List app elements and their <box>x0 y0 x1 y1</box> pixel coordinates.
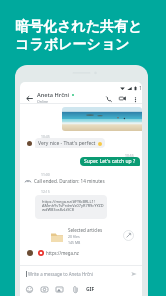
button[interactable]: Call ended. Duration: 14 minutes <box>25 178 105 184</box>
staticText: Selected articles <box>68 227 103 233</box>
staticText: 10:55 <box>125 153 134 158</box>
staticText: Online <box>37 99 49 104</box>
button[interactable]: Very nice - That's perfect <box>35 138 105 148</box>
button[interactable]: Video call <box>117 93 128 104</box>
staticText: 11:00 <box>41 172 50 177</box>
button[interactable]: More options <box>130 94 140 104</box>
staticText: https://mega.nz <box>46 250 79 256</box>
button[interactable]: Gallery <box>54 284 65 295</box>
button[interactable]: GIF <box>85 285 96 294</box>
button[interactable]: Selected articles <box>20 224 142 242</box>
button[interactable]: Back <box>24 93 34 103</box>
staticText: 145 MB <box>68 240 81 245</box>
button[interactable]: Call <box>103 93 114 104</box>
button[interactable]: Attach <box>70 284 81 295</box>
button[interactable]: Download <box>123 230 134 241</box>
staticText: GIF <box>86 286 95 293</box>
button[interactable]: Camera <box>39 284 50 295</box>
staticText: 20 files <box>68 234 80 239</box>
staticText: Write a message to Aneta Hrčni <box>28 271 93 277</box>
staticText: 12:15 <box>41 189 50 194</box>
staticText: Super. Let's catch up ? <box>84 158 136 165</box>
button[interactable]: Write a message to Aneta Hrčni <box>26 266 137 282</box>
button[interactable]: Super. Let's catch up ? <box>80 157 140 166</box>
staticText: 12:30 <box>139 85 142 92</box>
staticText: コラボレーション <box>15 36 130 54</box>
button[interactable]: https://mega.nz <box>27 250 79 256</box>
button[interactable]: https://mega.nz/#F!9kBRLL1! AMmhYvTvPrdm… <box>35 195 107 219</box>
staticText: 10:45 <box>41 134 50 139</box>
button[interactable]: Aneta Hrčni <box>37 91 74 104</box>
staticText: Call ended. Duration: 14 minutes <box>34 178 105 184</box>
staticText: 暗号化された共有と <box>15 18 143 36</box>
button[interactable]: Emoji <box>24 284 35 295</box>
staticText: Aneta Hrčni <box>37 91 70 99</box>
staticText: Very nice - That's perfect <box>38 140 96 147</box>
button[interactable]: Photo <box>62 107 142 131</box>
staticText: https://mega.nz/#F!9kBRLL1! AMmhYvTvPrdm… <box>42 199 104 213</box>
